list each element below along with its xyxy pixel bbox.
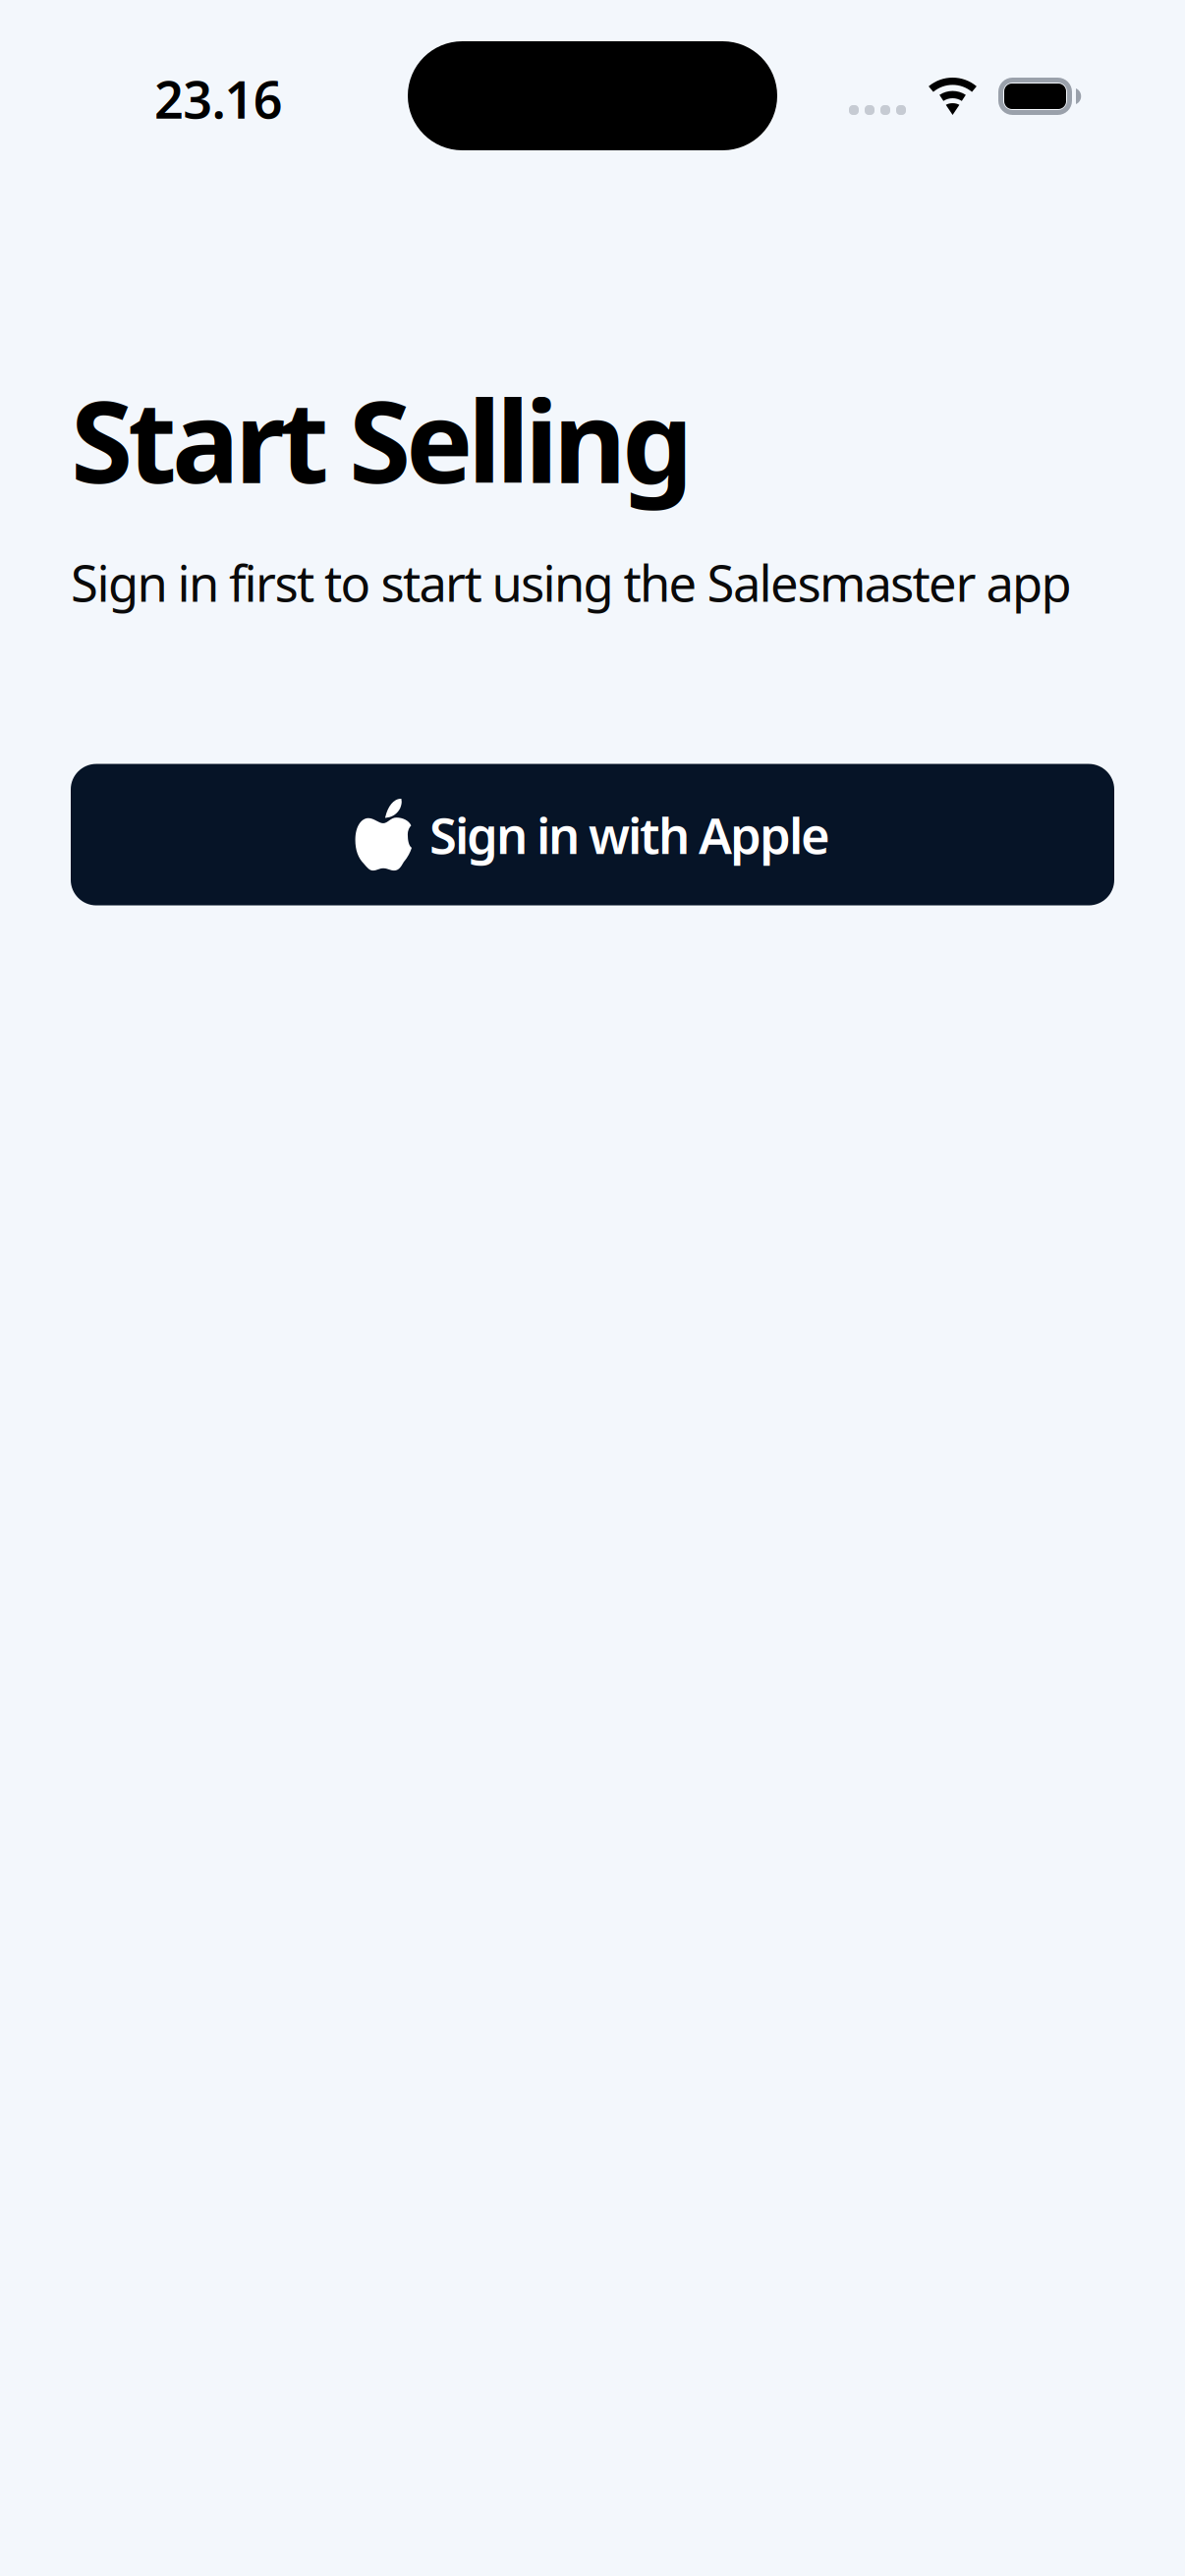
button[interactable]: Sign in with Apple xyxy=(71,764,1114,905)
staticText: Sign in first to start using the Salesma… xyxy=(71,549,1072,616)
staticText: Start Selling xyxy=(71,364,693,514)
staticText: Sign in with Apple xyxy=(429,802,830,868)
staticText: 23.16 xyxy=(154,65,283,133)
